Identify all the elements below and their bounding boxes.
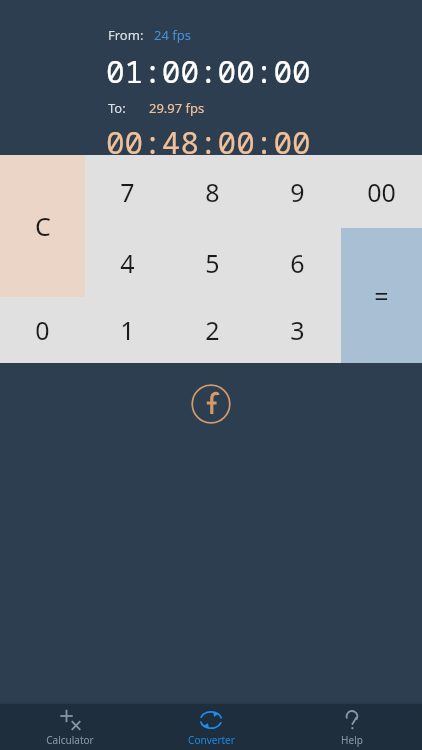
staticText: 00 [367,175,396,209]
staticText: C [35,209,51,243]
staticText: 3 [290,313,305,347]
button[interactable]: 9 [255,155,340,228]
button[interactable]: 4 [85,228,170,297]
staticText: 6 [290,246,305,280]
button[interactable]: 3 [255,297,340,363]
staticText: 1 [120,313,135,347]
button[interactable]: 5 [170,228,255,297]
button[interactable]: Converter [140,704,282,747]
button[interactable]: 01:00:00:00 [106,50,311,92]
staticText: 00:48:00:00 [106,121,311,155]
button[interactable]: 00:48:00:00 [106,121,311,155]
staticText: 7 [120,175,135,209]
button[interactable]: 6 [255,228,340,297]
button[interactable]: Help [282,704,422,747]
staticText: 9 [290,175,305,209]
staticText: 4 [120,246,135,280]
button[interactable]: To: [108,99,205,117]
staticText: 0 [35,313,50,347]
button[interactable]: C [0,155,85,297]
staticText: Help [341,733,363,747]
staticText: 01:00:00:00 [106,50,311,92]
staticText: Calculator [46,733,94,747]
button[interactable]: = [341,228,422,363]
button[interactable]: 8 [170,155,255,228]
staticText: 8 [205,175,220,209]
button[interactable]: 1 [85,297,170,363]
button[interactable]: Facebook [191,384,231,424]
button[interactable]: 2 [170,297,255,363]
button[interactable]: 7 [85,155,170,228]
button[interactable]: From: [108,26,191,44]
staticText: 29.97 fps [149,99,205,117]
button[interactable]: 0 [0,297,85,363]
staticText: 24 fps [154,26,191,44]
staticText: = [374,279,389,313]
button[interactable]: Calculator [0,704,140,747]
staticText: From: [108,26,144,44]
staticText: To: [108,99,126,117]
staticText: 5 [205,246,220,280]
button[interactable]: 00 [340,155,422,228]
staticText: 2 [205,313,220,347]
staticText: Converter [188,733,235,747]
